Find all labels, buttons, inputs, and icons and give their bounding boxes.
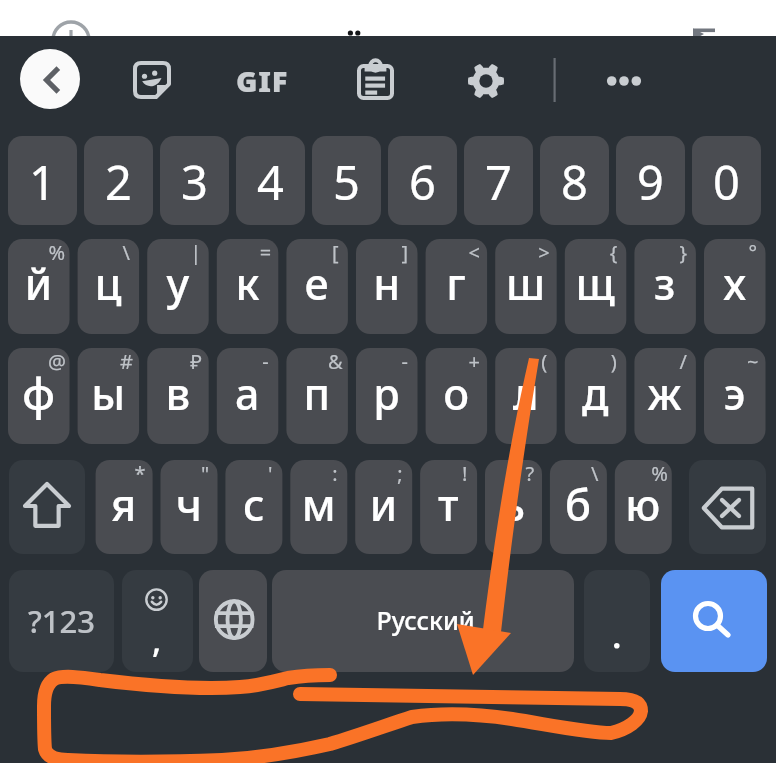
button[interactable]: г: [425, 239, 486, 334]
button[interactable]: з: [634, 239, 695, 334]
button[interactable]: Comma: [122, 570, 193, 672]
button[interactable]: ч: [160, 460, 217, 554]
button[interactable]: 4: [236, 136, 305, 225]
button[interactable]: 9: [616, 136, 685, 225]
button[interactable]: п: [286, 348, 347, 444]
button[interactable]: к: [216, 239, 277, 334]
button[interactable]: й: [8, 239, 69, 334]
button[interactable]: в: [147, 348, 208, 444]
button[interactable]: ш: [495, 239, 556, 334]
button[interactable]: щ: [564, 239, 625, 334]
button[interactable]: 0: [692, 136, 761, 225]
button[interactable]: ф: [8, 348, 69, 444]
button[interactable]: ы: [77, 348, 138, 444]
button[interactable]: GIF: [230, 50, 296, 110]
button[interactable]: н: [356, 239, 417, 334]
button[interactable]: ц: [77, 239, 138, 334]
button[interactable]: т: [420, 460, 477, 554]
button[interactable]: Clipboard: [342, 50, 408, 110]
button[interactable]: ж: [634, 348, 695, 444]
button[interactable]: я: [95, 460, 152, 554]
button[interactable]: е: [286, 239, 347, 334]
button[interactable]: 7: [464, 136, 533, 225]
button[interactable]: у: [147, 239, 208, 334]
button[interactable]: х: [704, 239, 765, 334]
button[interactable]: Stickers: [118, 50, 184, 110]
button[interactable]: Backspace: [689, 460, 766, 554]
button[interactable]: 3: [160, 136, 229, 225]
button[interactable]: Back: [20, 49, 80, 109]
button[interactable]: ю: [614, 460, 671, 554]
button[interactable]: и: [355, 460, 412, 554]
button[interactable]: More options: [591, 50, 657, 110]
button[interactable]: э: [704, 348, 765, 444]
button[interactable]: л: [495, 348, 556, 444]
button[interactable]: Period: [584, 570, 650, 672]
button[interactable]: Русский: [272, 570, 574, 672]
button[interactable]: ?123: [9, 570, 114, 672]
button[interactable]: д: [564, 348, 625, 444]
button[interactable]: ь: [485, 460, 542, 554]
button[interactable]: 2: [84, 136, 153, 225]
button[interactable]: 6: [388, 136, 457, 225]
button[interactable]: Settings: [454, 50, 520, 110]
button[interactable]: с: [225, 460, 282, 554]
button[interactable]: Change language: [199, 570, 267, 672]
button[interactable]: Search: [661, 570, 767, 672]
button[interactable]: р: [356, 348, 417, 444]
button[interactable]: 5: [312, 136, 381, 225]
button[interactable]: а: [216, 348, 277, 444]
button[interactable]: о: [425, 348, 486, 444]
button[interactable]: м: [290, 460, 347, 554]
button[interactable]: 1: [8, 136, 77, 225]
button[interactable]: б: [549, 460, 606, 554]
button[interactable]: 8: [540, 136, 609, 225]
button[interactable]: Shift: [9, 460, 85, 554]
